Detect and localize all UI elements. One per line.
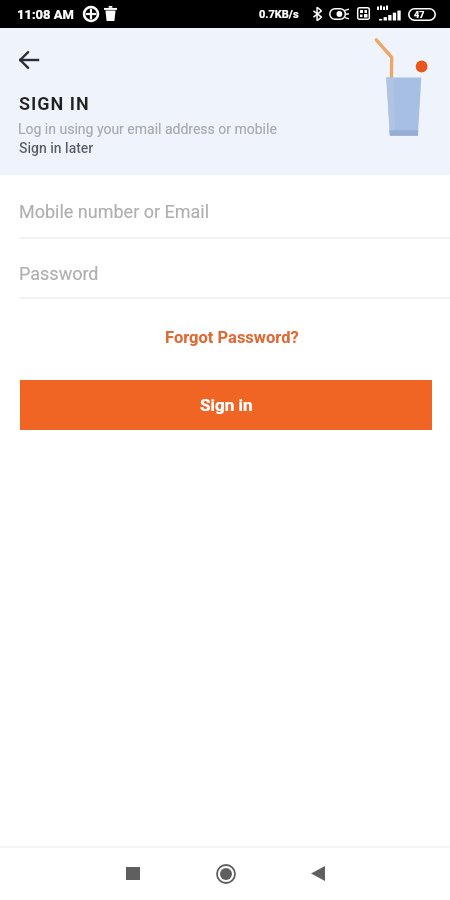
staticText: SIGN IN <box>19 93 90 114</box>
staticText: 0.7KB/s <box>259 8 299 21</box>
button[interactable]: Back <box>295 851 340 896</box>
button[interactable]: Password <box>0 252 450 298</box>
button[interactable]: Home <box>203 851 248 896</box>
staticText: Sign in <box>200 395 253 415</box>
button[interactable]: Sign in later <box>19 140 94 156</box>
button[interactable]: Forgot Password? <box>157 325 307 350</box>
staticText: 11:08 AM <box>17 7 74 22</box>
button[interactable]: Recent apps <box>110 851 155 896</box>
button[interactable]: Mobile number or Email <box>0 190 450 238</box>
staticText: Forgot Password? <box>165 328 299 347</box>
staticText: 47 <box>414 10 425 21</box>
staticText: Sign in later <box>19 140 94 156</box>
button[interactable]: Sign in <box>20 380 432 430</box>
staticText: Log in using your email address or mobil… <box>18 121 277 137</box>
button[interactable]: Back <box>6 37 51 82</box>
staticText: Mobile number or Email <box>19 201 210 222</box>
staticText: Password <box>19 263 99 284</box>
